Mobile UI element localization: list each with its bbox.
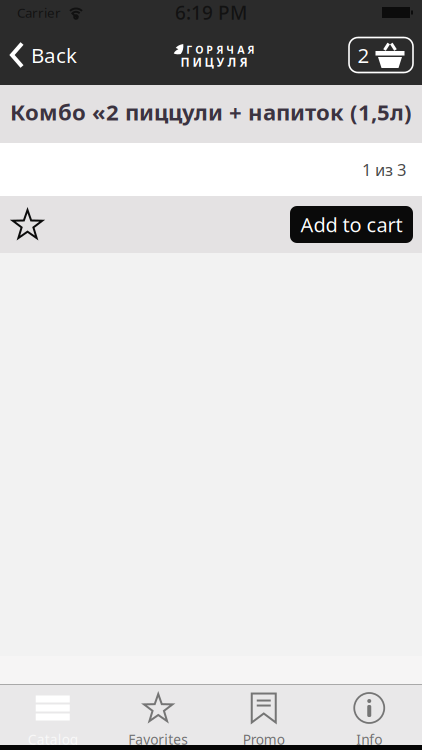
button[interactable]: Promo [211, 685, 316, 745]
button[interactable]: Info [316, 685, 422, 745]
button[interactable]: Add to favorites [0, 208, 44, 241]
staticText: Catalog [28, 730, 78, 749]
staticText: Carrier [17, 4, 61, 21]
staticText: П И Ц У Л Я [180, 54, 247, 70]
staticText: Favorites [128, 730, 188, 749]
staticText: Back [31, 41, 77, 69]
button[interactable]: Catalog [0, 685, 105, 745]
staticText: 2 [357, 41, 369, 69]
staticText: 1 из 3 [362, 158, 406, 181]
button[interactable]: Back [0, 41, 77, 69]
staticText: 6:19 PM [175, 0, 247, 25]
staticText: Info [356, 730, 382, 749]
button[interactable]: Favorites [105, 685, 211, 745]
button[interactable]: Add to cart [290, 206, 413, 243]
staticText: Г О Р Я Ч А Я [186, 42, 254, 57]
staticText: Add to cart [300, 211, 402, 238]
button[interactable]: Cart, 2 items [349, 37, 422, 72]
staticText: Promo [243, 730, 285, 749]
staticText: Комбо «2 пиццули + напиток (1,5л) [10, 97, 412, 127]
